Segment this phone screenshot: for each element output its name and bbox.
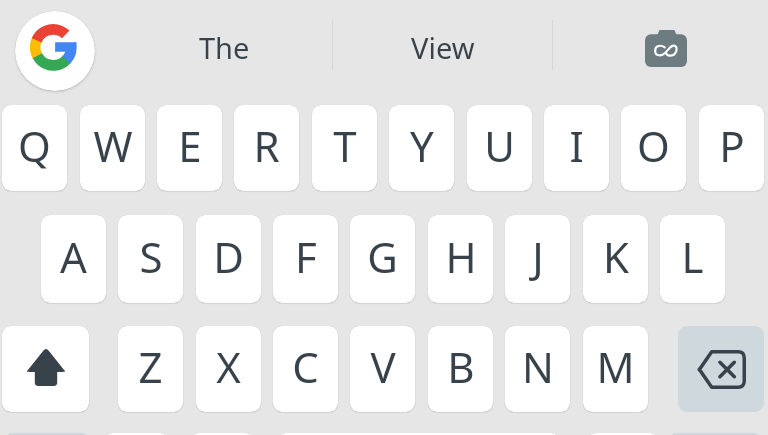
- staticText: U: [484, 117, 515, 174]
- staticText: I: [569, 117, 584, 174]
- button[interactable]: Enter: [668, 433, 762, 435]
- button[interactable]: P: [699, 105, 764, 191]
- staticText: G: [367, 228, 398, 285]
- staticText: Y: [410, 117, 434, 174]
- staticText: K: [603, 228, 629, 285]
- staticText: V: [370, 338, 396, 395]
- button[interactable]: N: [505, 326, 570, 412]
- staticText: H: [445, 228, 477, 285]
- button[interactable]: K: [583, 215, 648, 303]
- button[interactable]: S: [118, 215, 183, 303]
- button[interactable]: Shift: [2, 326, 89, 412]
- button[interactable]: Y: [389, 105, 454, 191]
- staticText: D: [213, 228, 244, 285]
- button[interactable]: The: [113, 1, 335, 93]
- button[interactable]: Symbols: [4, 433, 90, 435]
- button[interactable]: Space: [277, 433, 560, 435]
- staticText: W: [93, 117, 133, 174]
- staticText: Z: [138, 338, 163, 395]
- button[interactable]: M: [583, 326, 648, 412]
- button[interactable]: G: [350, 215, 415, 303]
- button[interactable]: H: [428, 215, 493, 303]
- button[interactable]: W: [80, 105, 145, 191]
- button[interactable]: L: [660, 215, 725, 303]
- staticText: F: [295, 228, 317, 285]
- button[interactable]: B: [428, 326, 493, 412]
- button[interactable]: Z: [118, 326, 183, 412]
- button[interactable]: View: [333, 1, 552, 93]
- button[interactable]: X: [196, 326, 261, 412]
- button[interactable]: Q: [2, 105, 67, 191]
- staticText: E: [178, 117, 202, 174]
- staticText: S: [139, 228, 163, 285]
- staticText: B: [447, 338, 475, 395]
- button[interactable]: J: [505, 215, 570, 303]
- staticText: X: [216, 338, 241, 395]
- button[interactable]: V: [350, 326, 415, 412]
- button[interactable]: C: [273, 326, 338, 412]
- button[interactable]: U: [467, 105, 532, 191]
- staticText: A: [60, 228, 87, 285]
- staticText: O: [637, 117, 670, 174]
- button[interactable]: R: [234, 105, 299, 191]
- staticText: Q: [18, 117, 51, 174]
- button[interactable]: Backspace: [678, 326, 764, 412]
- button[interactable]: A: [41, 215, 106, 303]
- button[interactable]: Period: [587, 433, 659, 435]
- staticText: T: [333, 117, 357, 174]
- staticText: N: [522, 338, 554, 395]
- staticText: The: [199, 28, 250, 67]
- button[interactable]: T: [312, 105, 377, 191]
- button[interactable]: Emoji: [190, 433, 254, 435]
- staticText: J: [532, 228, 544, 285]
- button[interactable]: Comma: [104, 433, 169, 435]
- staticText: M: [596, 338, 635, 395]
- staticText: View: [411, 28, 475, 67]
- staticText: C: [292, 338, 319, 395]
- button[interactable]: D: [196, 215, 261, 303]
- staticText: L: [681, 228, 704, 285]
- button[interactable]: Google Lens: [618, 10, 714, 82]
- button[interactable]: Google: [15, 11, 95, 91]
- staticText: R: [253, 117, 280, 174]
- button[interactable]: O: [621, 105, 686, 191]
- button[interactable]: E: [157, 105, 222, 191]
- staticText: P: [719, 117, 745, 174]
- button[interactable]: I: [544, 105, 609, 191]
- button[interactable]: F: [273, 215, 338, 303]
